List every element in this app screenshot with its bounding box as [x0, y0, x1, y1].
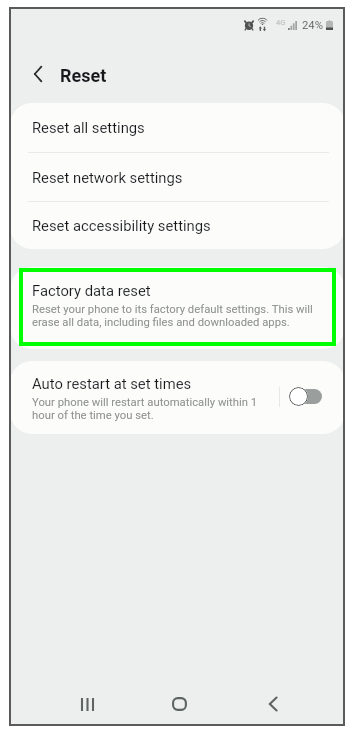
staticText: Reset accessibility settings	[32, 217, 211, 234]
staticText: Reset	[60, 65, 107, 86]
button[interactable]: Back	[251, 686, 295, 722]
button[interactable]: Factory data reset	[19, 268, 336, 346]
button[interactable]: Recent apps	[65, 686, 109, 722]
button[interactable]: Home	[157, 686, 201, 722]
staticText: 4G	[276, 18, 286, 27]
staticText: Factory data reset	[32, 282, 151, 299]
staticText: Your phone will restart automatically wi…	[32, 396, 270, 422]
staticText: Reset network settings	[32, 169, 183, 186]
staticText: Auto restart at set times	[32, 375, 192, 392]
staticText: Reset your phone to its factory default …	[32, 303, 320, 329]
button[interactable]: Reset network settings	[10, 153, 345, 201]
button[interactable]: Auto restart at set times	[10, 361, 345, 434]
button[interactable]: Navigate up	[23, 59, 53, 89]
button[interactable]: Reset all settings	[10, 103, 345, 152]
staticText: 24%	[302, 19, 323, 32]
staticText: Reset all settings	[32, 119, 145, 136]
button[interactable]: Auto restart at set times toggle	[290, 389, 322, 404]
button[interactable]: Reset accessibility settings	[10, 202, 345, 249]
